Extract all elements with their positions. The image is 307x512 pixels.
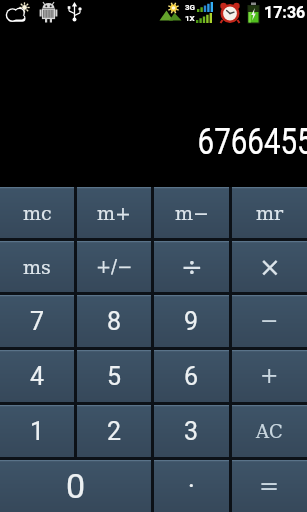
button[interactable]: mr xyxy=(232,187,307,238)
staticText: − xyxy=(260,308,279,334)
staticText: +/− xyxy=(96,256,133,277)
button[interactable]: AC xyxy=(232,405,307,457)
button[interactable]: 6 xyxy=(154,350,229,402)
staticText: . xyxy=(188,463,195,493)
button[interactable]: ms xyxy=(0,241,74,292)
button[interactable]: − xyxy=(232,295,307,347)
staticText: × xyxy=(259,252,281,282)
staticText: m+ xyxy=(97,202,131,224)
staticText: 2 xyxy=(107,417,122,446)
button[interactable]: m+ xyxy=(77,187,151,238)
staticText: 1 xyxy=(30,417,45,446)
button[interactable]: × xyxy=(232,241,307,292)
staticText: AC xyxy=(256,421,283,442)
staticText: 3 xyxy=(184,417,199,446)
button[interactable]: 8 xyxy=(77,295,151,347)
staticText: 3G xyxy=(185,3,196,12)
button[interactable]: mc xyxy=(0,187,74,238)
button[interactable]: 2 xyxy=(77,405,151,457)
button[interactable]: 3 xyxy=(154,405,229,457)
staticText: 5 xyxy=(107,362,122,391)
button[interactable]: 1 xyxy=(0,405,74,457)
staticText: 17:36 xyxy=(264,3,306,22)
staticText: mr xyxy=(256,202,284,224)
staticText: ÷ xyxy=(181,252,203,282)
staticText: 6766455 xyxy=(198,121,307,163)
staticText: 4 xyxy=(30,362,45,391)
button[interactable]: ÷ xyxy=(154,241,229,292)
staticText: mc xyxy=(23,202,52,224)
button[interactable]: = xyxy=(232,460,307,512)
button[interactable]: . xyxy=(154,460,229,512)
button[interactable]: 4 xyxy=(0,350,74,402)
button[interactable]: m− xyxy=(154,187,229,238)
button[interactable]: 9 xyxy=(154,295,229,347)
staticText: + xyxy=(260,363,279,389)
staticText: 6 xyxy=(184,362,199,391)
button[interactable]: + xyxy=(232,350,307,402)
button[interactable]: 5 xyxy=(77,350,151,402)
staticText: 9 xyxy=(184,307,199,336)
button[interactable]: +/− xyxy=(77,241,151,292)
staticText: ms xyxy=(23,256,51,278)
button[interactable]: 0 xyxy=(0,460,151,512)
staticText: 8 xyxy=(107,307,122,336)
staticText: 7 xyxy=(30,307,45,336)
staticText: 1X xyxy=(185,14,195,23)
staticText: m− xyxy=(175,202,209,224)
button[interactable]: 7 xyxy=(0,295,74,347)
staticText: 0 xyxy=(66,466,86,506)
staticText: = xyxy=(259,472,280,500)
